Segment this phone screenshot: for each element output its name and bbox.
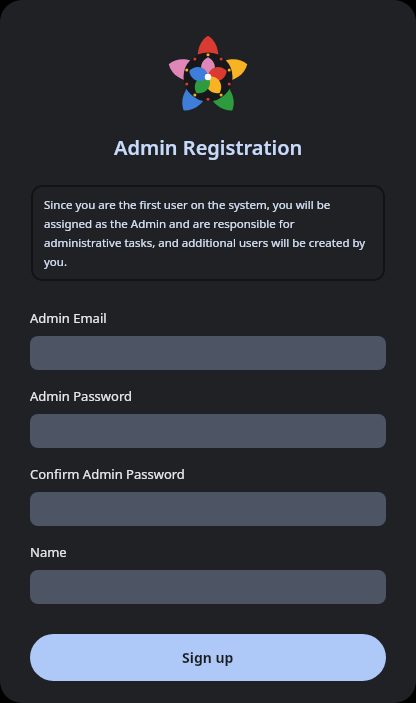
staticText: Admin Registration (114, 134, 303, 161)
staticText: Admin Password (30, 387, 133, 405)
staticText: Confirm Admin Password (30, 465, 185, 483)
button[interactable]: Admin Password (30, 414, 386, 448)
staticText: Since you are the first user on the syst… (44, 197, 372, 269)
button[interactable]: Sign up (30, 634, 386, 681)
staticText: Sign up (182, 648, 234, 667)
staticText: Admin Email (30, 309, 107, 327)
button[interactable]: Name (30, 570, 386, 604)
other: App logo (165, 34, 251, 120)
staticText: Name (30, 543, 67, 561)
button[interactable]: Confirm Admin Password (30, 492, 386, 526)
button[interactable]: Admin Email (30, 336, 386, 370)
